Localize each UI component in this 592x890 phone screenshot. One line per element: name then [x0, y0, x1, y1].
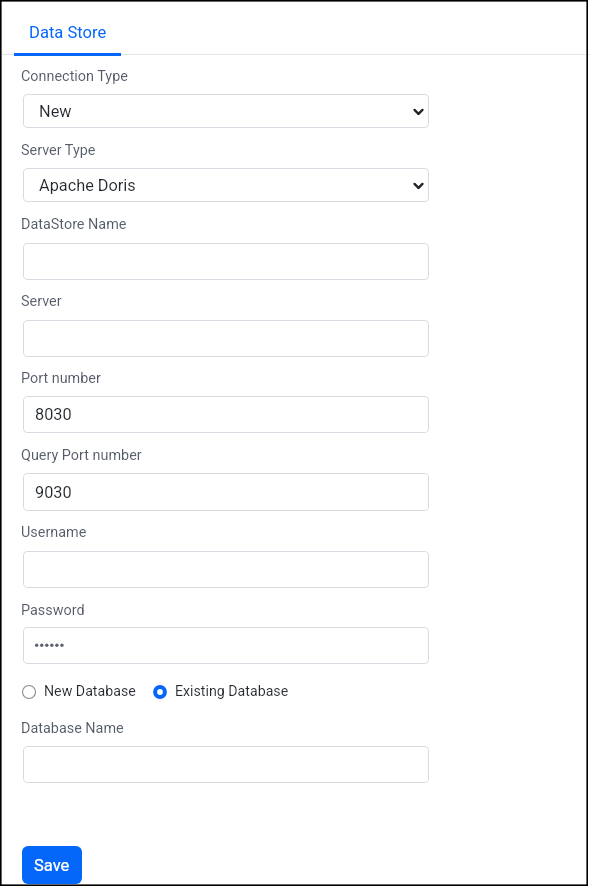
staticText: 8030 [35, 405, 72, 424]
staticText: 9030 [35, 483, 72, 502]
button[interactable]: Data Store [14, 2, 121, 56]
staticText: Apache Doris [39, 176, 136, 195]
staticText: Connection Type [21, 68, 128, 85]
button[interactable] [23, 243, 429, 280]
staticText: Existing Database [175, 683, 289, 700]
button[interactable]: 9030 [23, 473, 429, 511]
staticText: Server [21, 293, 62, 310]
staticText: New Database [44, 683, 136, 700]
staticText: Save [34, 856, 70, 875]
other: Open dropdown [413, 180, 424, 191]
button[interactable] [23, 627, 429, 664]
staticText: Password [21, 602, 85, 619]
staticText: New [39, 102, 72, 121]
button[interactable] [23, 746, 429, 783]
staticText: Query Port number [21, 447, 142, 464]
button[interactable]: Existing Database [153, 683, 289, 700]
button[interactable]: 8030 [23, 396, 429, 433]
staticText: Database Name [21, 720, 124, 737]
staticText: Data Store [29, 23, 107, 42]
staticText: Port number [21, 370, 101, 387]
staticText: Username [21, 524, 87, 541]
button[interactable]: Apache Doris [23, 168, 429, 202]
staticText: DataStore Name [21, 216, 127, 233]
button[interactable]: Save [22, 846, 82, 884]
button[interactable]: New [23, 94, 429, 128]
other: Open dropdown [413, 106, 424, 117]
staticText: Server Type [21, 142, 96, 159]
button[interactable] [23, 320, 429, 357]
button[interactable]: New Database [22, 683, 136, 700]
button[interactable] [23, 551, 429, 588]
